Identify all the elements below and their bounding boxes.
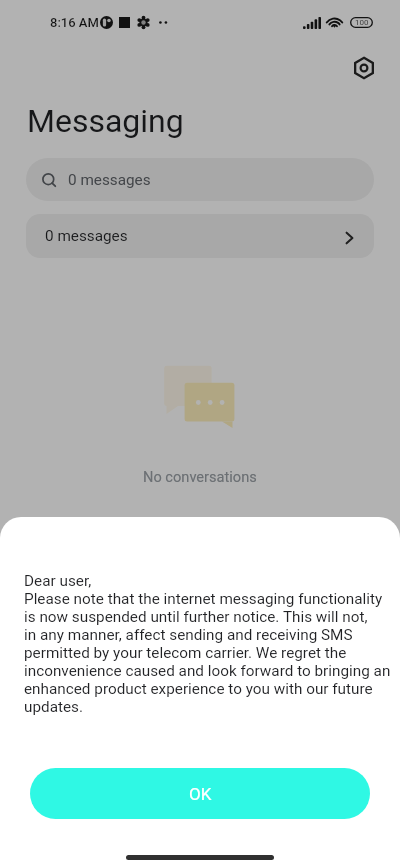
staticText: 8:16 AM [50, 15, 99, 30]
staticText: 0 messages [68, 171, 151, 189]
staticText: No conversations [143, 468, 257, 485]
button[interactable]: 0 messages [26, 158, 374, 201]
button[interactable]: 0 messages [26, 214, 374, 258]
staticText: Messaging [27, 102, 184, 140]
button[interactable]: Settings [343, 47, 384, 88]
staticText: 100 [355, 18, 369, 27]
button[interactable]: OK [30, 768, 370, 819]
staticText: OK [189, 784, 212, 804]
staticText: 0 messages [45, 227, 128, 245]
staticText: Dear user, Please note that the internet… [24, 572, 400, 716]
